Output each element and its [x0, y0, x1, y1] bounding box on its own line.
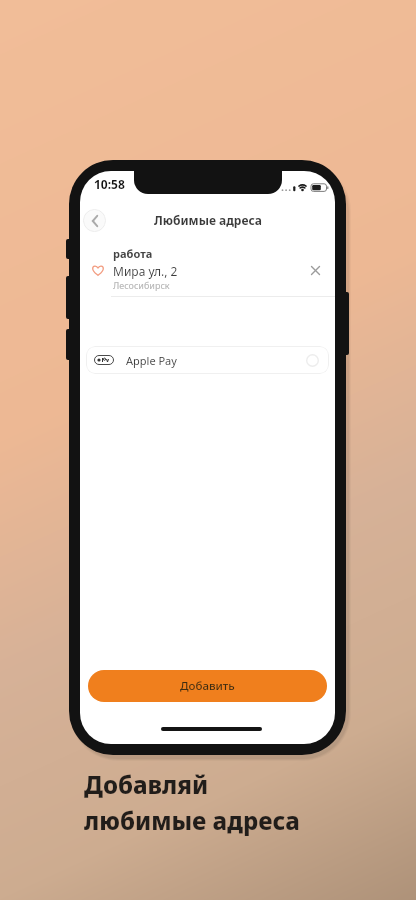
staticText: Мира ул., 2	[113, 263, 178, 279]
staticText: любимые адреса	[84, 804, 300, 837]
staticText: 10:58	[94, 176, 125, 192]
button[interactable]	[83, 209, 106, 232]
staticText: Добавляй	[84, 768, 209, 801]
staticText: работа	[113, 246, 153, 261]
button[interactable]: работа	[80, 243, 335, 259]
staticText: Добавить	[180, 678, 235, 694]
staticText: Лесосибирск	[113, 279, 170, 291]
staticText: Любимые адреса	[154, 212, 262, 228]
staticText: Apple Pay	[126, 353, 177, 368]
button[interactable]: Добавить	[88, 670, 327, 702]
button[interactable]: Apple Pay	[86, 346, 329, 374]
